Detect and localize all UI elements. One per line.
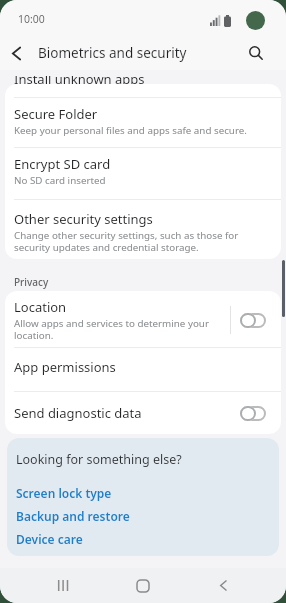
staticText: 10:00: [18, 12, 45, 26]
button[interactable]: Screen lock type: [16, 485, 112, 501]
button[interactable]: Location: [5, 291, 281, 347]
button[interactable]: Backup and restore: [16, 508, 130, 524]
button[interactable]: [201, 568, 245, 603]
button[interactable]: [2, 39, 30, 67]
staticText: Looking for something else?: [16, 451, 182, 468]
staticText: Encrypt SD card: [14, 155, 111, 173]
staticText: Keep your personal files and apps safe a…: [14, 124, 247, 137]
button[interactable]: App permissions: [5, 348, 281, 391]
button[interactable]: [121, 568, 165, 603]
staticText: Secure Folder: [14, 105, 98, 123]
button[interactable]: [242, 39, 270, 67]
staticText: Biometrics and security: [38, 44, 187, 62]
staticText: Install unknown apps: [14, 76, 145, 84]
staticText: Allow apps and services to determine you…: [14, 317, 209, 342]
staticText: No SD card inserted: [14, 174, 106, 187]
button[interactable]: Secure Folder: [5, 98, 281, 147]
button[interactable]: Other security settings: [5, 200, 281, 259]
button[interactable]: [41, 568, 85, 603]
staticText: Privacy: [14, 275, 49, 289]
staticText: Change other security settings, such as …: [14, 229, 239, 254]
button[interactable]: Send diagnostic data: [5, 392, 281, 434]
button[interactable]: Encrypt SD card: [5, 148, 281, 199]
button[interactable]: Device care: [16, 531, 83, 547]
staticText: Send diagnostic data: [14, 404, 142, 422]
staticText: Location: [14, 298, 67, 316]
staticText: App permissions: [14, 358, 116, 376]
staticText: Other security settings: [14, 210, 153, 228]
